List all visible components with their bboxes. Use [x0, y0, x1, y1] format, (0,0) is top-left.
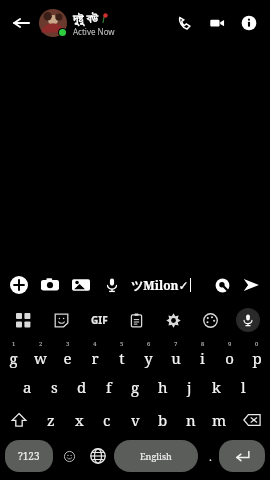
button[interactable]: s — [41, 370, 68, 403]
staticText: o — [225, 348, 234, 368]
button[interactable]: ツMilon✓ — [131, 277, 210, 293]
staticText: m — [212, 410, 227, 430]
staticText: 5 — [120, 340, 124, 348]
staticText: p — [252, 348, 262, 368]
button[interactable]: a — [13, 370, 41, 403]
staticText: 4 — [93, 340, 97, 348]
button[interactable]: k — [203, 370, 230, 403]
staticText: 9 — [228, 340, 232, 348]
staticText: GIF — [91, 313, 108, 327]
button[interactable]: Send — [238, 272, 264, 298]
button[interactable]: 2 — [27, 337, 54, 370]
button[interactable]: Back — [6, 8, 36, 38]
button[interactable]: Clipboard — [118, 303, 155, 337]
button[interactable]: Camera — [37, 272, 63, 298]
button[interactable]: l — [230, 370, 257, 403]
button[interactable]: z — [37, 403, 65, 436]
staticText: s — [51, 377, 58, 397]
button[interactable]: Profile photo — [39, 9, 67, 37]
staticText: 2 — [39, 340, 43, 348]
staticText: y — [144, 348, 153, 368]
button[interactable]: h — [149, 370, 176, 403]
button[interactable]: Stickers — [42, 303, 80, 337]
staticText: l — [241, 377, 246, 397]
button[interactable]: Voice message — [99, 272, 125, 298]
button[interactable]: j — [176, 370, 203, 403]
staticText: 1 — [12, 340, 16, 348]
button[interactable]: 4 — [81, 337, 108, 370]
button[interactable]: Gallery — [68, 272, 94, 298]
button[interactable]: 0 — [243, 337, 270, 370]
staticText: 3 — [66, 340, 70, 348]
staticText: English — [140, 450, 172, 462]
button[interactable]: Change language — [85, 440, 111, 472]
button[interactable]: More options — [6, 272, 32, 298]
button[interactable]: 6 — [135, 337, 162, 370]
staticText: v — [131, 410, 140, 430]
staticText: f — [106, 377, 112, 397]
button[interactable]: Enter — [219, 440, 265, 472]
button[interactable]: 8 — [189, 337, 216, 370]
staticText: a — [23, 377, 32, 397]
staticText: 8 — [201, 340, 205, 348]
staticText: 7 — [174, 340, 178, 348]
staticText: g — [9, 348, 18, 368]
staticText: g — [131, 377, 140, 397]
button[interactable]: x — [65, 403, 93, 436]
staticText: b — [158, 410, 168, 430]
button[interactable]: 1 — [0, 337, 27, 370]
button[interactable]: g — [122, 370, 149, 403]
staticText: Active Now — [73, 26, 115, 37]
button[interactable]: d — [68, 370, 95, 403]
staticText: u — [171, 348, 181, 368]
button[interactable]: n — [177, 403, 205, 436]
button[interactable]: Video call — [204, 10, 230, 36]
staticText: . — [209, 449, 212, 464]
button[interactable]: b — [149, 403, 177, 436]
staticText: x — [75, 410, 84, 430]
button[interactable]: Conversation information — [236, 10, 262, 36]
staticText: k — [212, 377, 221, 397]
staticText: 0 — [255, 340, 259, 348]
button[interactable]: Themes — [192, 303, 229, 337]
button[interactable]: m — [205, 403, 233, 436]
button[interactable]: Delete — [233, 403, 270, 436]
button[interactable]: Search — [210, 273, 234, 297]
staticText: 6 — [147, 340, 151, 348]
button[interactable]: Emoji — [53, 440, 85, 472]
staticText: h — [158, 377, 168, 397]
button[interactable]: English — [114, 440, 198, 472]
button[interactable]: f — [95, 370, 122, 403]
button[interactable]: Call — [172, 10, 198, 36]
button[interactable]: 5 — [108, 337, 135, 370]
staticText: দুষ্টু বউ — [73, 10, 98, 26]
button[interactable]: Voice input — [236, 308, 260, 332]
staticText: j — [187, 377, 192, 397]
button[interactable]: Shift — [0, 403, 37, 436]
button[interactable]: v — [121, 403, 149, 436]
staticText: ツMilon✓ — [131, 277, 189, 293]
button[interactable]: Keyboard settings grid — [4, 303, 42, 337]
button[interactable]: GIF — [80, 303, 118, 337]
button[interactable]: 9 — [216, 337, 243, 370]
staticText: i — [200, 348, 205, 368]
button[interactable]: ?123 — [5, 440, 53, 472]
staticText: n — [186, 410, 196, 430]
staticText: r — [91, 348, 99, 368]
staticText: e — [63, 348, 72, 368]
staticText: w — [34, 348, 47, 368]
button[interactable]: Settings — [155, 303, 192, 337]
button[interactable]: 3 — [54, 337, 81, 370]
button[interactable]: 7 — [162, 337, 189, 370]
staticText: ?123 — [18, 449, 40, 463]
button[interactable]: . — [201, 440, 219, 472]
staticText: d — [77, 377, 87, 397]
staticText: c — [103, 410, 111, 430]
button[interactable]: c — [93, 403, 121, 436]
staticText: t — [119, 348, 125, 368]
staticText: z — [47, 410, 55, 430]
